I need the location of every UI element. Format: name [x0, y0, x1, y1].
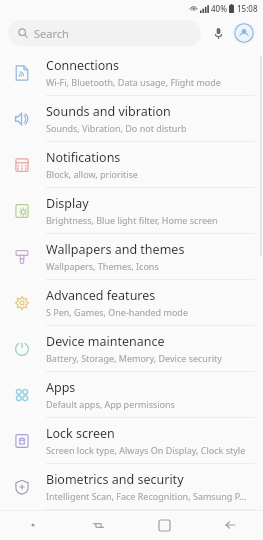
button[interactable]: Lock screen — [0, 418, 263, 464]
button[interactable]: Notifications — [0, 142, 263, 188]
staticText: Notifications — [46, 149, 121, 166]
button[interactable]: Display — [0, 188, 263, 234]
staticText: Brightness, Blue light filter, Home scre… — [46, 214, 218, 226]
button[interactable]: Home — [131, 510, 197, 540]
staticText: Lock screen — [46, 425, 115, 442]
staticText: Wallpapers and themes — [46, 241, 185, 258]
button[interactable]: Back — [197, 510, 263, 540]
button[interactable]: Advanced features — [0, 280, 263, 326]
staticText: Display — [46, 195, 89, 212]
staticText: 15:08 — [237, 3, 258, 14]
staticText: Biometrics and security — [46, 471, 184, 488]
staticText: 40% — [211, 3, 227, 14]
staticText: Sounds, Vibration, Do not disturb — [46, 122, 187, 134]
staticText: Device maintenance — [46, 333, 165, 350]
button[interactable]: Connections — [0, 50, 263, 96]
button[interactable]: Biometrics and security — [0, 464, 263, 510]
staticText: Wallpapers, Themes, Icons — [46, 260, 159, 272]
staticText: Connections — [46, 57, 119, 74]
button[interactable]: Search — [8, 20, 201, 46]
staticText: Screen lock type, Always On Display, Clo… — [46, 444, 246, 456]
button[interactable]: Device maintenance — [0, 326, 263, 372]
button[interactable]: Dot — [0, 510, 65, 540]
staticText: Sounds and vibration — [46, 103, 171, 120]
staticText: Advanced features — [46, 287, 156, 304]
staticText: Block, allow, prioritise — [46, 168, 138, 180]
staticText: Default apps, App permissions — [46, 398, 175, 410]
staticText: Wi-Fi, Bluetooth, Data usage, Flight mod… — [46, 76, 221, 88]
button[interactable]: Apps — [0, 372, 263, 418]
button[interactable]: Wallpapers and themes — [0, 234, 263, 280]
staticText: Battery, Storage, Memory, Device securit… — [46, 352, 222, 364]
staticText: Apps — [46, 379, 76, 396]
button[interactable]: Sounds and vibration — [0, 96, 263, 142]
staticText: Search — [34, 26, 69, 41]
button[interactable]: Account — [233, 22, 255, 44]
staticText: Intelligent Scan, Face Recognition, Sams… — [46, 490, 247, 502]
button[interactable]: Voice search — [207, 22, 229, 44]
staticText: S Pen, Games, One-handed mode — [46, 306, 188, 318]
button[interactable]: Recents — [65, 510, 131, 540]
